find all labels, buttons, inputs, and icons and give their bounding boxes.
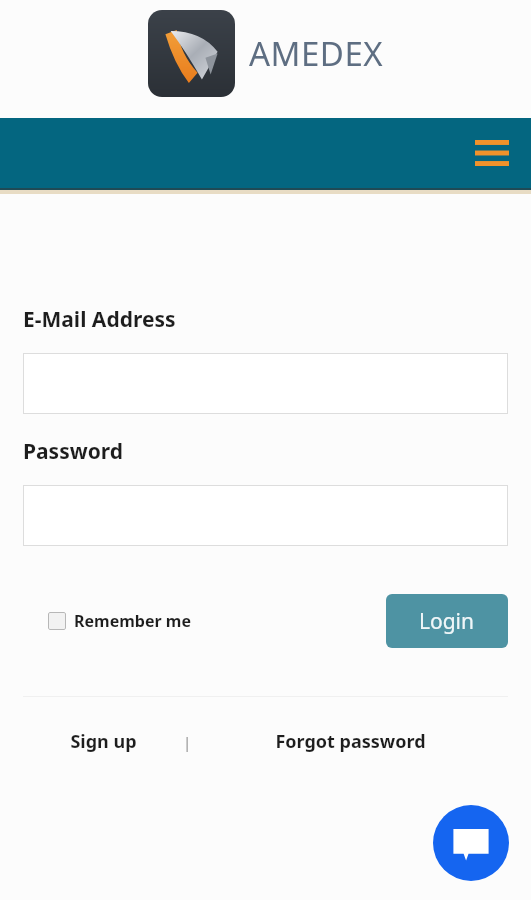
staticText: Sign up: [70, 729, 137, 754]
button[interactable]: Remember me: [48, 610, 191, 632]
staticText: Forgot password: [275, 729, 426, 754]
button[interactable]: Menu: [0, 118, 531, 188]
staticText: Password: [23, 437, 124, 466]
staticText: AMEDEX: [249, 31, 384, 76]
staticText: |: [183, 732, 192, 752]
staticText: Remember me: [74, 610, 191, 632]
button[interactable]: Open chat: [433, 805, 509, 881]
button[interactable]: Sign up: [23, 729, 183, 754]
button[interactable]: Forgot password: [192, 729, 508, 754]
staticText: E-Mail Address: [23, 305, 176, 334]
button[interactable]: Login: [386, 594, 508, 648]
button[interactable]: [23, 485, 508, 546]
staticText: Login: [419, 607, 475, 636]
button[interactable]: [23, 353, 508, 414]
